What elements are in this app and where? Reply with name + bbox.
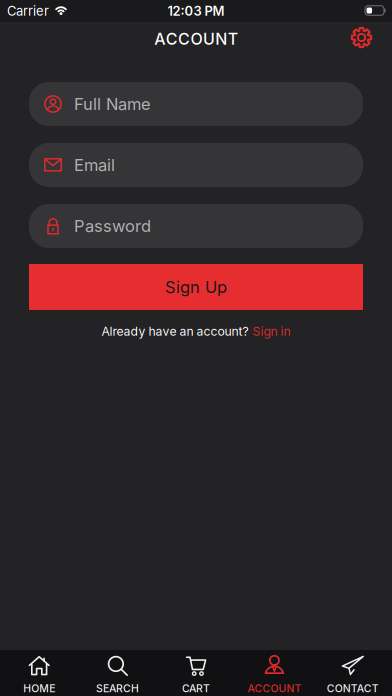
staticText: Sign Up — [165, 277, 227, 297]
staticText: Sign in — [252, 324, 290, 339]
button[interactable]: Full Name — [29, 82, 363, 126]
staticText: SEARCH — [96, 682, 139, 695]
staticText: CART — [182, 682, 210, 695]
button[interactable]: Settings — [351, 28, 372, 49]
staticText: HOME — [23, 682, 55, 695]
staticText: Email — [74, 155, 115, 175]
staticText: Password — [74, 216, 151, 236]
button[interactable]: SEARCH — [78, 653, 157, 693]
button[interactable]: Password — [29, 204, 363, 248]
button[interactable]: Sign Up — [29, 264, 363, 310]
button[interactable]: HOME — [0, 653, 78, 693]
staticText: Carrier — [7, 3, 49, 19]
button[interactable]: CONTACT — [314, 653, 392, 693]
staticText: CONTACT — [327, 682, 379, 695]
staticText: ACCOUNT — [154, 29, 238, 49]
button[interactable]: Email — [29, 143, 363, 187]
staticText: Already have an account? — [101, 324, 248, 339]
button[interactable]: CART — [157, 653, 235, 693]
staticText: ACCOUNT — [247, 682, 301, 695]
button[interactable]: ACCOUNT — [235, 653, 314, 693]
staticText: Full Name — [74, 94, 151, 114]
button[interactable]: Sign in — [252, 324, 290, 339]
staticText: 12:03 PM — [167, 3, 224, 19]
